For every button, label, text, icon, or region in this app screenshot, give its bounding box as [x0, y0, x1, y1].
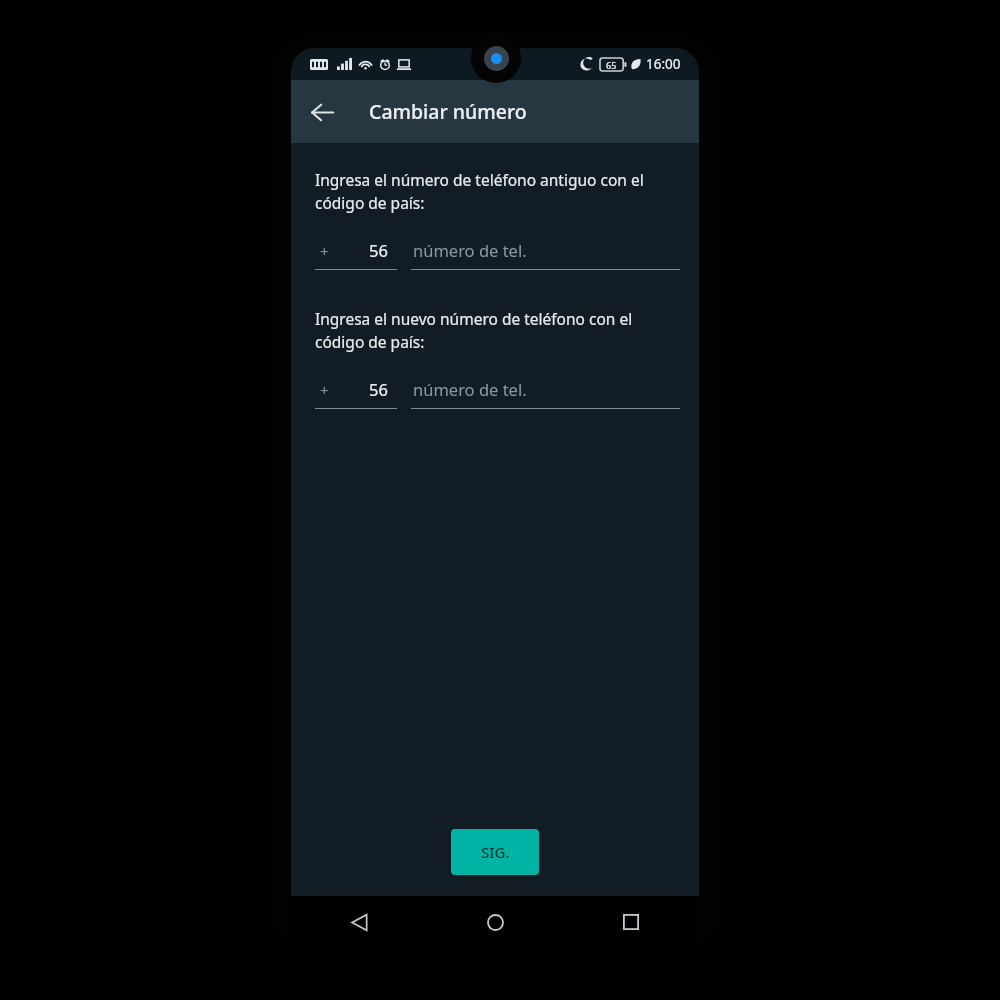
staticText: Ingresa el nuevo número de teléfono con …	[315, 308, 679, 353]
staticText: 16:00	[646, 55, 681, 73]
button[interactable]: +	[315, 378, 397, 409]
button[interactable]: +	[315, 239, 397, 270]
staticText: Cambiar número	[369, 98, 527, 125]
staticText: número de tel.	[413, 378, 527, 400]
staticText: 65	[606, 59, 617, 71]
button[interactable]: Home	[427, 896, 563, 948]
staticText: 56	[329, 239, 388, 261]
button[interactable]: número de tel.	[411, 239, 680, 270]
staticText: +	[320, 380, 329, 400]
staticText: +	[320, 241, 329, 261]
button[interactable]: Back	[298, 88, 346, 136]
button[interactable]: Back	[291, 896, 427, 948]
button[interactable]: Recent apps	[563, 896, 699, 948]
button[interactable]: SIG.	[451, 829, 539, 875]
staticText: 56	[329, 378, 388, 400]
staticText: número de tel.	[413, 239, 527, 261]
staticText: Ingresa el número de teléfono antiguo co…	[315, 169, 679, 214]
button[interactable]: número de tel.	[411, 378, 680, 409]
staticText: SIG.	[481, 842, 510, 862]
